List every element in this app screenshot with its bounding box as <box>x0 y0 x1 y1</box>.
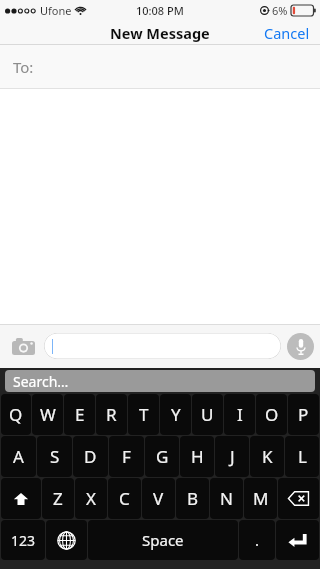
button[interactable]: D <box>73 436 108 477</box>
button[interactable]: Y <box>160 394 191 435</box>
button[interactable]: Q <box>1 394 31 435</box>
staticText: V <box>153 487 164 510</box>
staticText: C <box>119 487 130 510</box>
button[interactable]: J <box>215 436 249 477</box>
staticText: R <box>106 403 117 426</box>
button[interactable]: R <box>96 394 127 435</box>
staticText: P <box>298 403 309 426</box>
button[interactable]: F <box>109 436 144 477</box>
button[interactable]: To: <box>0 45 320 89</box>
button[interactable]: X <box>75 478 107 519</box>
button[interactable]: Camera <box>6 329 40 363</box>
button[interactable]: 123 <box>1 520 45 560</box>
staticText: Z <box>53 487 63 510</box>
staticText: E <box>75 403 85 426</box>
button[interactable]: W <box>32 394 63 435</box>
staticText: S <box>50 445 60 468</box>
button[interactable]: Search… <box>5 370 315 392</box>
button[interactable]: C <box>108 478 141 519</box>
staticText: 10:08 PM <box>136 3 184 18</box>
button[interactable]: T <box>128 394 159 435</box>
button[interactable] <box>44 333 281 359</box>
staticText: J <box>230 445 235 468</box>
staticText: Q <box>9 403 23 426</box>
staticText: I <box>237 403 243 426</box>
staticText: U <box>201 403 214 426</box>
staticText: Cancel <box>264 23 310 42</box>
staticText: D <box>84 445 97 468</box>
button[interactable]: L <box>285 436 319 477</box>
button[interactable]: N <box>210 478 243 519</box>
button[interactable]: O <box>256 394 287 435</box>
staticText: 123 <box>11 531 36 550</box>
staticText: M <box>253 487 269 510</box>
button[interactable]: M <box>244 478 277 519</box>
staticText: F <box>122 445 131 468</box>
button[interactable]: P <box>288 394 319 435</box>
button[interactable]: Cancel <box>254 20 320 45</box>
staticText: To: <box>13 57 34 77</box>
staticText: . <box>255 530 260 550</box>
staticText: L <box>298 445 307 468</box>
button[interactable]: B <box>176 478 209 519</box>
staticText: H <box>191 445 204 468</box>
button[interactable]: Dictate <box>287 333 314 360</box>
staticText: G <box>156 445 169 468</box>
button[interactable]: Return <box>276 520 319 560</box>
staticText: Ufone <box>40 3 72 18</box>
staticText: Search… <box>13 372 69 391</box>
staticText: W <box>40 403 56 426</box>
button[interactable]: Z <box>42 478 74 519</box>
staticText: K <box>262 445 273 468</box>
staticText: 6% <box>272 3 288 18</box>
button[interactable]: . <box>239 520 275 560</box>
staticText: T <box>139 403 149 426</box>
button[interactable]: K <box>250 436 284 477</box>
button[interactable]: G <box>145 436 179 477</box>
staticText: Space <box>142 530 184 550</box>
staticText: A <box>13 445 24 468</box>
button[interactable]: H <box>180 436 214 477</box>
button[interactable]: Change keyboard language <box>46 520 87 560</box>
button[interactable]: I <box>224 394 255 435</box>
button[interactable]: V <box>142 478 175 519</box>
staticText: X <box>86 487 96 510</box>
button[interactable]: Shift <box>1 478 41 519</box>
button[interactable]: Backspace <box>278 478 319 519</box>
staticText: Y <box>171 403 181 426</box>
staticText: N <box>220 487 233 510</box>
button[interactable]: A <box>1 436 36 477</box>
staticText: O <box>265 403 279 426</box>
button[interactable]: S <box>37 436 72 477</box>
staticText: New Message <box>110 23 210 43</box>
button[interactable]: U <box>192 394 223 435</box>
button[interactable]: Space <box>88 520 238 560</box>
staticText: B <box>187 487 199 510</box>
button[interactable]: E <box>64 394 95 435</box>
